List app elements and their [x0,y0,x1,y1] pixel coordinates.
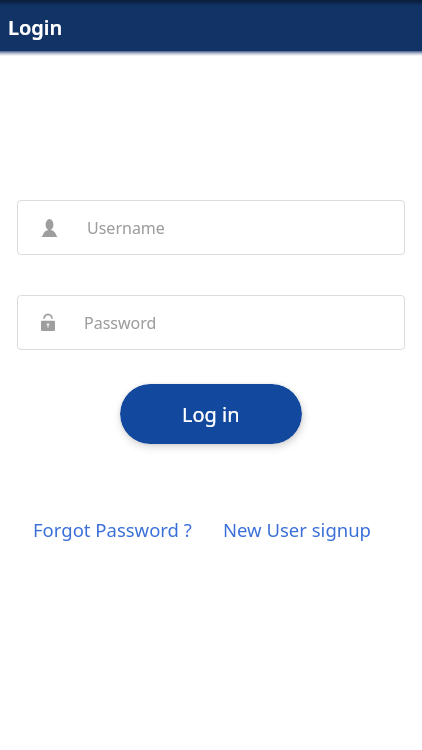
button[interactable]: Log in [120,384,302,444]
button[interactable]: Password [17,295,405,350]
staticText: Log in [182,401,240,428]
staticText: Login [8,14,63,41]
staticText: Username [87,217,165,239]
button[interactable]: Forgot Password ? [33,517,192,542]
staticText: Password [84,312,157,334]
button[interactable]: New User signup [223,517,372,542]
button[interactable]: Username [17,200,405,255]
